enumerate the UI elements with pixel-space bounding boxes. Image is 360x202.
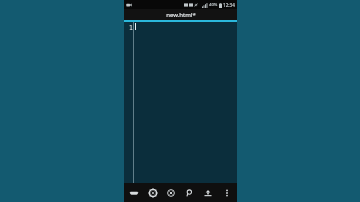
button[interactable]: Undo	[163, 183, 179, 202]
button[interactable]: new.html*	[124, 9, 237, 20]
staticText: 1	[129, 23, 133, 32]
button[interactable]: Settings	[145, 183, 161, 202]
button[interactable]: More options	[219, 183, 235, 202]
button[interactable]: Search	[182, 183, 198, 202]
button[interactable]: 1	[124, 22, 237, 183]
button[interactable]: Keyboard	[126, 183, 142, 202]
staticText: 40%	[209, 2, 218, 8]
staticText: new.html*	[166, 11, 196, 19]
staticText: 12:34	[223, 2, 235, 8]
button[interactable]: Upload	[200, 183, 216, 202]
